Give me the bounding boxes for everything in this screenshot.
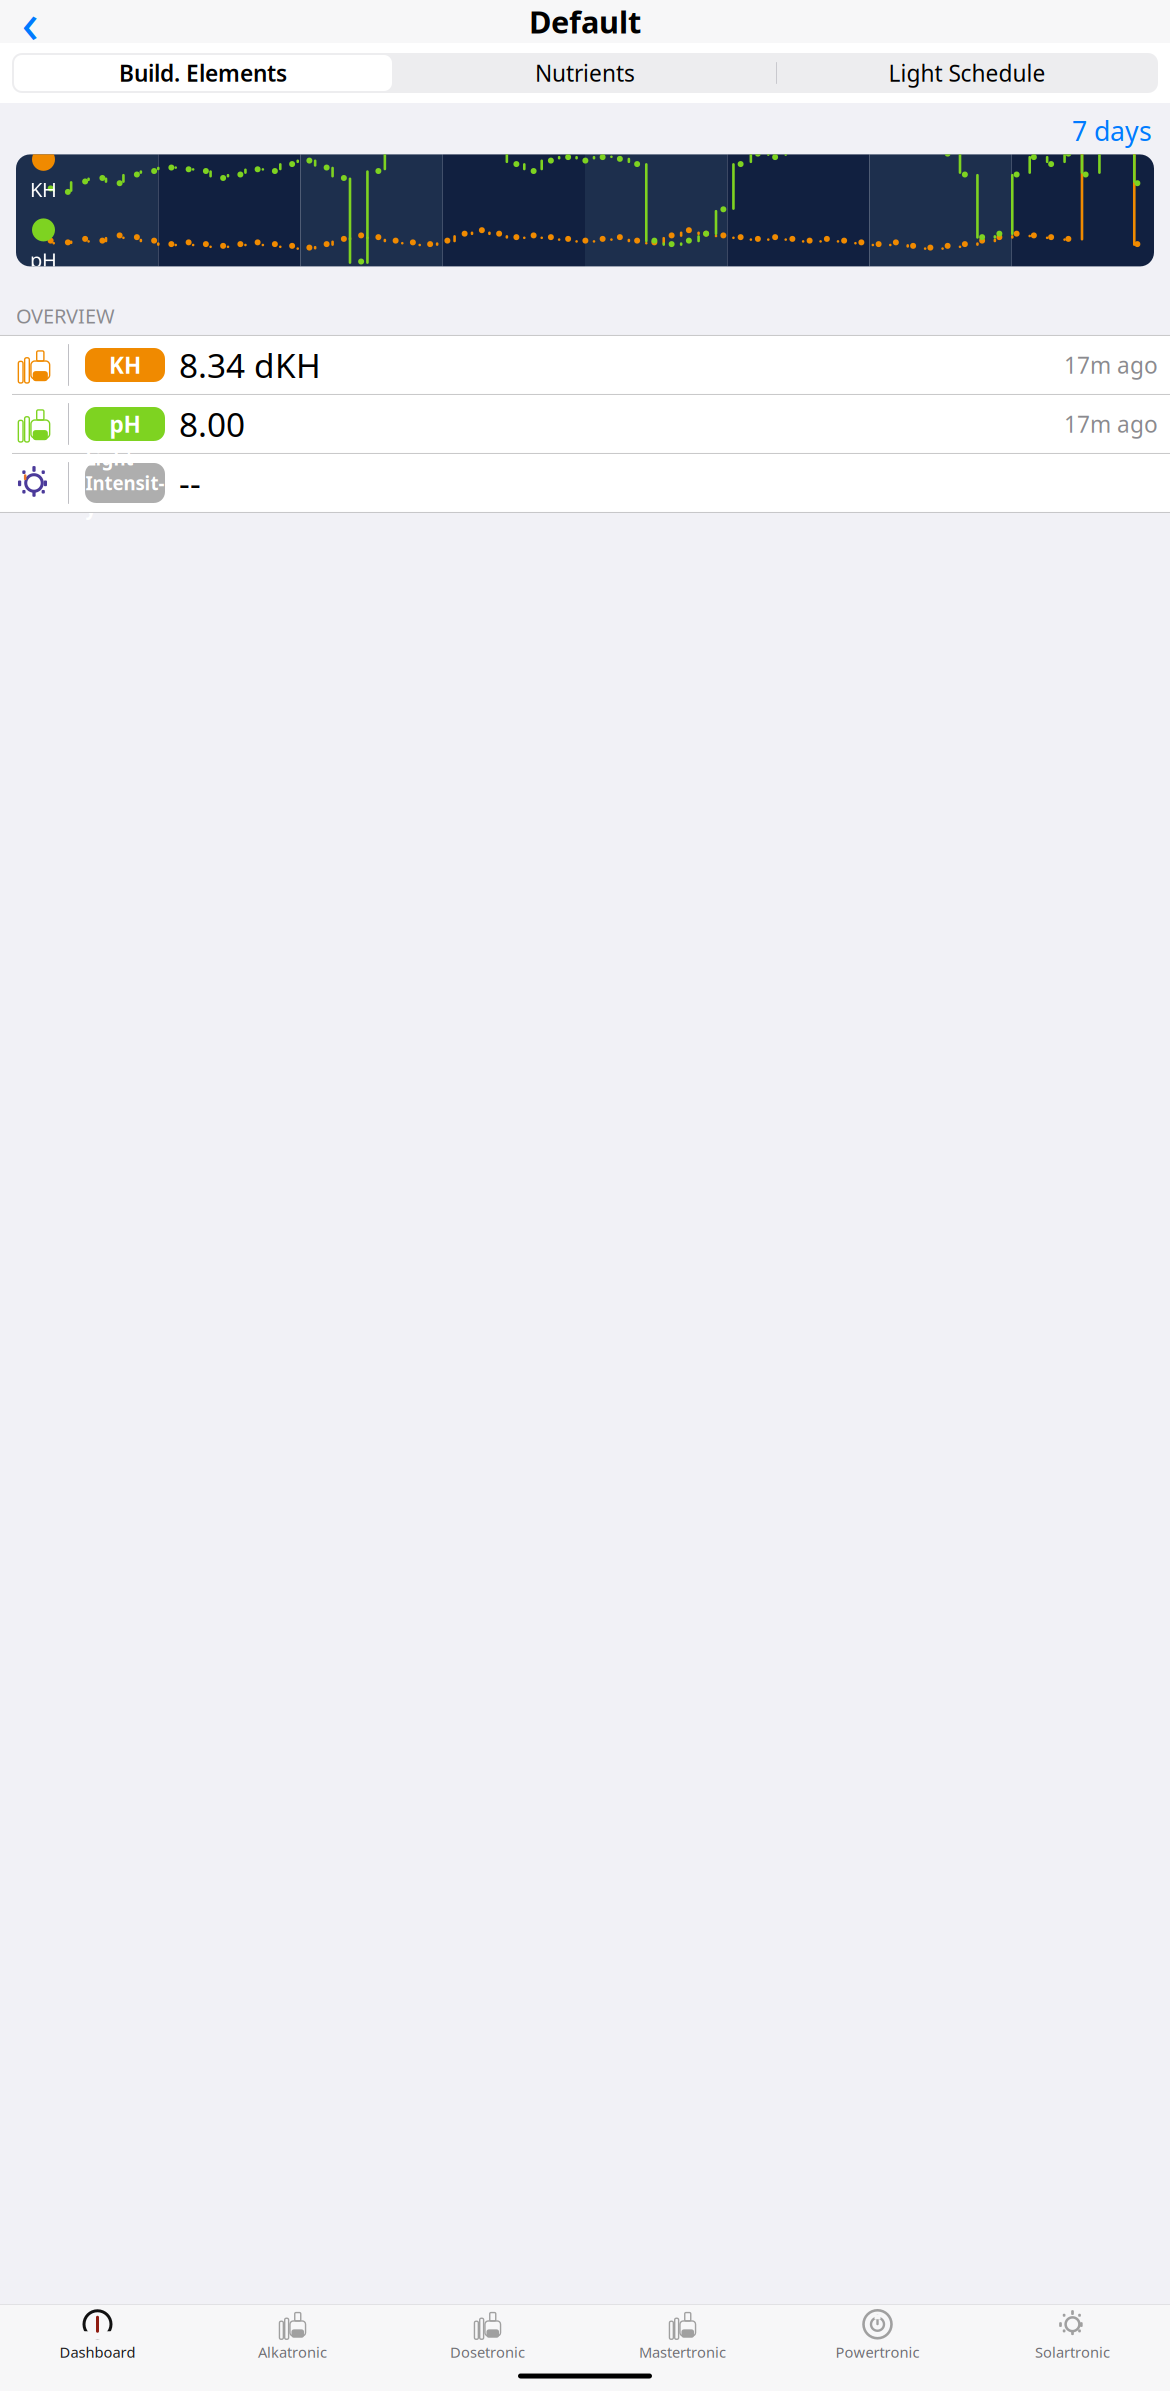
staticText: 8.34 dKH (179, 343, 321, 387)
button[interactable]: 7 days (1068, 113, 1156, 148)
button[interactable]: Dashboard (0, 2304, 195, 2362)
button[interactable]: Nutrients (394, 53, 776, 93)
button[interactable]: Powertronic (780, 2304, 975, 2362)
button[interactable]: Alkatronic (195, 2304, 390, 2362)
staticText: 7 days (1072, 113, 1152, 148)
button[interactable]: Back (4, 0, 56, 43)
staticText: Light Intensity (85, 446, 164, 520)
button[interactable]: Mastertronic (585, 2304, 780, 2362)
staticText: Default (529, 1, 641, 42)
button[interactable]: Build. Elements (12, 53, 394, 93)
button[interactable]: Solartronic (975, 2304, 1170, 2362)
button[interactable]: Light Schedule (776, 53, 1158, 93)
staticText: Dashboard (59, 2342, 135, 2362)
staticText: Nutrients (535, 58, 635, 88)
staticText: Dosetronic (450, 2342, 525, 2362)
staticText: Build. Elements (119, 58, 287, 88)
button[interactable]: KH (0, 336, 1170, 395)
staticText: Mastertronic (639, 2342, 726, 2362)
staticText: Light Schedule (888, 58, 1045, 88)
button[interactable]: Light Intensity (0, 454, 1170, 512)
staticText: Alkatronic (258, 2342, 327, 2362)
staticText: Solartronic (1035, 2342, 1110, 2362)
button[interactable]: pH (0, 395, 1170, 454)
staticText: 8.00 (179, 402, 245, 446)
button[interactable]: Dosetronic (390, 2304, 585, 2362)
staticText: OVERVIEW (16, 302, 115, 329)
staticText: -- (179, 461, 201, 505)
staticText: 17m ago (1064, 350, 1158, 380)
staticText: KH (30, 176, 57, 202)
staticText: pH (30, 246, 57, 273)
staticText: ‹ (21, 0, 38, 59)
staticText: pH (109, 409, 140, 439)
staticText: KH (109, 350, 141, 380)
staticText: 17m ago (1064, 409, 1158, 439)
staticText: Powertronic (835, 2342, 919, 2362)
